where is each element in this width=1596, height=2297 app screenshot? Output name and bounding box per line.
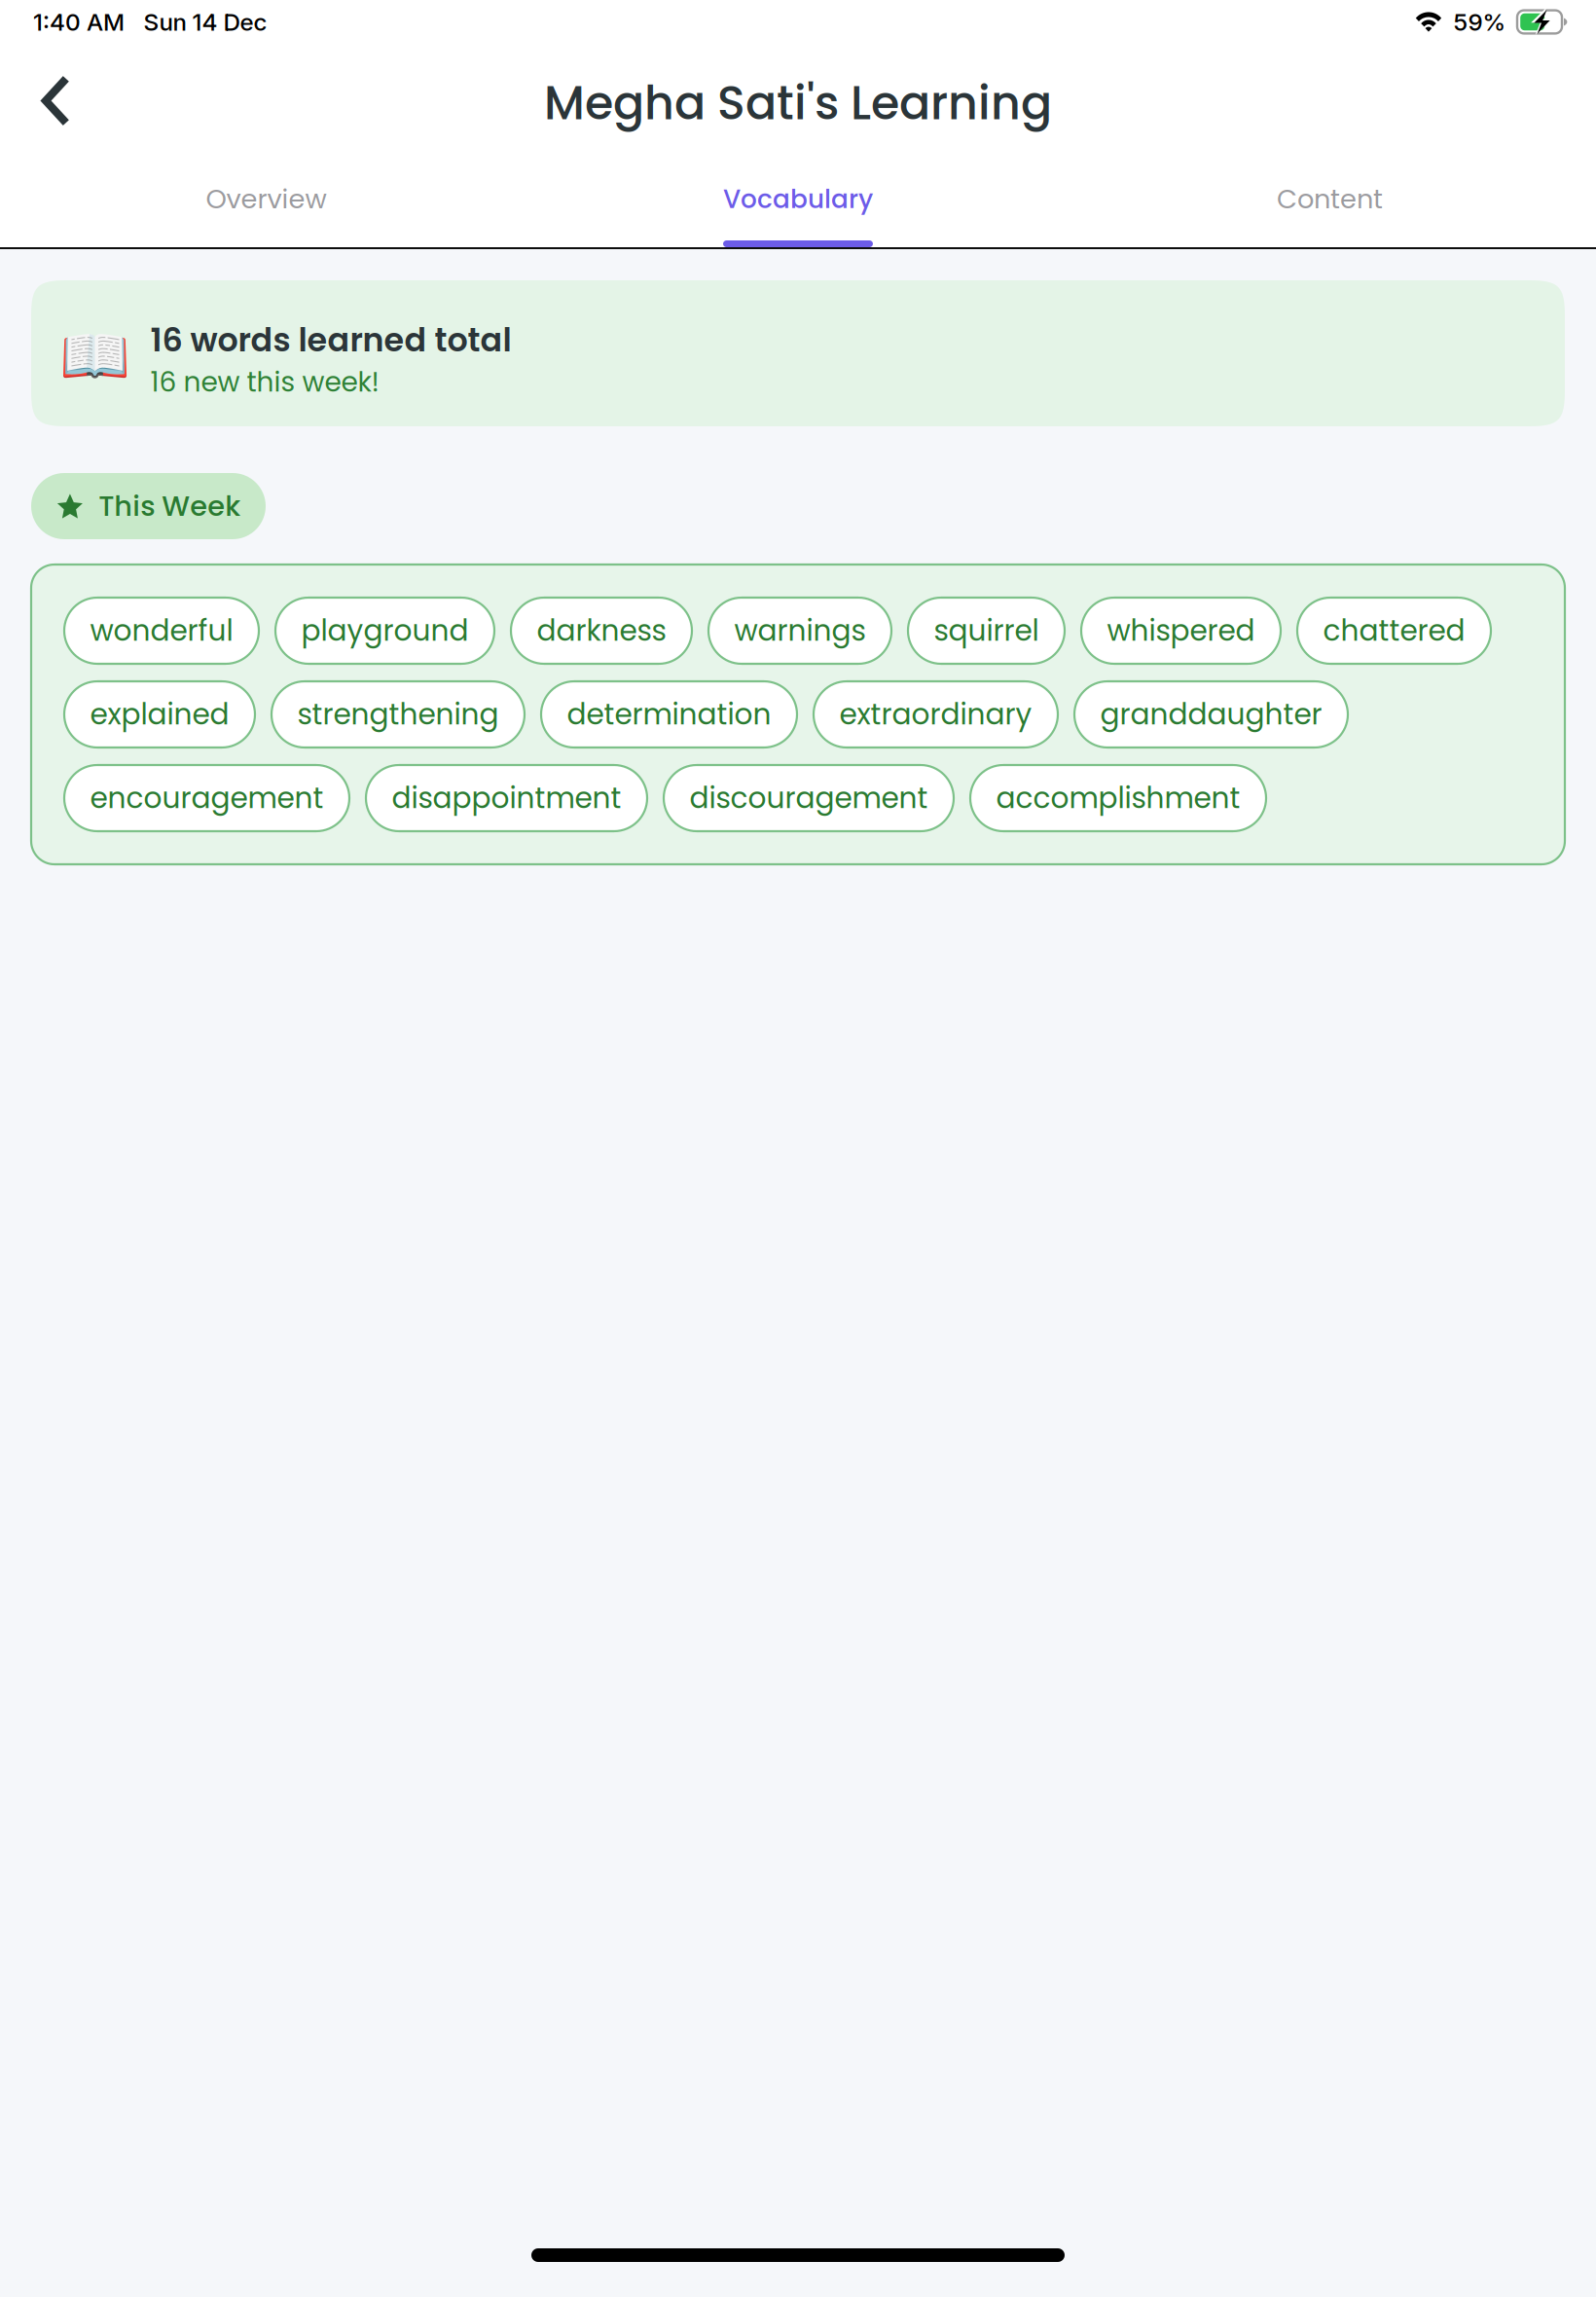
staticText: 16 new this week! — [150, 363, 379, 401]
staticText: darkness — [537, 611, 666, 651]
button[interactable]: Overview — [0, 158, 532, 247]
button[interactable]: Content — [1064, 158, 1596, 247]
staticText: playground — [301, 611, 469, 651]
button[interactable]: squirrel — [908, 598, 1065, 664]
staticText: 16 words learned total — [150, 317, 511, 363]
staticText: Vocabulary — [723, 181, 873, 217]
button[interactable]: playground — [275, 598, 494, 664]
button[interactable]: This Week — [31, 473, 266, 539]
button[interactable]: encouragement — [64, 765, 349, 831]
staticText: discouragement — [689, 778, 928, 818]
staticText: explained — [90, 694, 229, 735]
staticText: disappointment — [392, 778, 621, 818]
staticText: chattered — [1323, 611, 1465, 651]
staticText: wonderful — [90, 611, 233, 651]
staticText: whispered — [1107, 611, 1255, 651]
staticText: encouragement — [90, 778, 324, 818]
button[interactable]: discouragement — [664, 765, 954, 831]
staticText: Sun 14 Dec — [144, 7, 267, 36]
staticText: Overview — [206, 181, 326, 218]
button[interactable]: accomplishment — [970, 765, 1266, 831]
button[interactable]: darkness — [511, 598, 692, 664]
button[interactable]: wonderful — [64, 598, 259, 664]
button[interactable]: chattered — [1297, 598, 1491, 664]
staticText: Content — [1277, 181, 1383, 218]
button[interactable]: extraordinary — [814, 681, 1058, 747]
staticText: squirrel — [934, 611, 1039, 651]
staticText: 59% — [1453, 7, 1506, 36]
button[interactable]: warnings — [708, 598, 891, 664]
staticText: Megha Sati's Learning — [544, 71, 1052, 136]
button[interactable]: granddaughter — [1074, 681, 1348, 747]
staticText: granddaughter — [1100, 694, 1322, 735]
button[interactable]: disappointment — [366, 765, 647, 831]
staticText: extraordinary — [839, 694, 1032, 735]
button[interactable]: whispered — [1081, 598, 1281, 664]
staticText: determination — [567, 694, 771, 735]
staticText: 📖 — [59, 322, 130, 389]
staticText: This Week — [98, 486, 241, 526]
staticText: accomplishment — [996, 778, 1240, 818]
staticText: warnings — [734, 611, 866, 651]
button[interactable]: Back — [0, 44, 97, 158]
staticText: 1:40 AM — [33, 7, 125, 36]
button[interactable]: Vocabulary — [532, 158, 1064, 247]
button[interactable]: determination — [541, 681, 797, 747]
button[interactable]: strengthening — [272, 681, 525, 747]
staticText: strengthening — [297, 694, 499, 735]
button[interactable]: explained — [64, 681, 255, 747]
